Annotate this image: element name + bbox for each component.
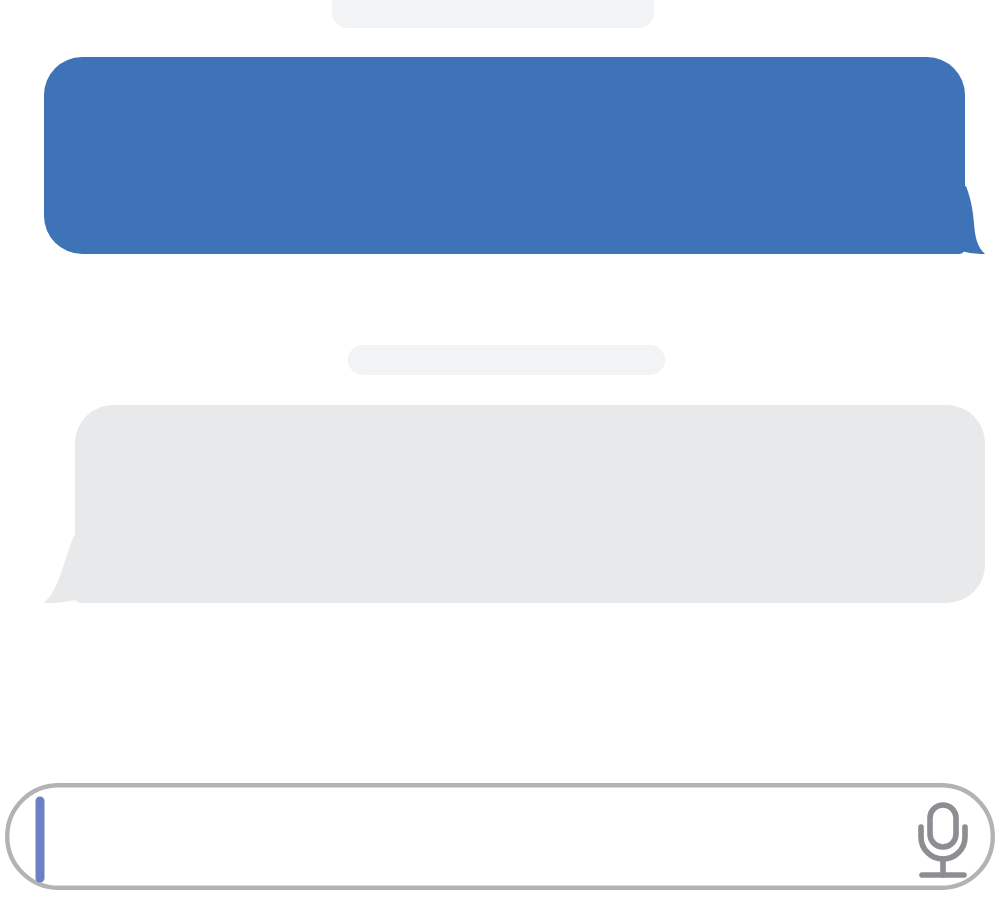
- button[interactable]: Sent message: [44, 57, 985, 254]
- button[interactable]: Voice input: [905, 807, 983, 885]
- button[interactable]: Received message: [44, 405, 985, 603]
- button[interactable]: Message input field: [5, 783, 995, 890]
